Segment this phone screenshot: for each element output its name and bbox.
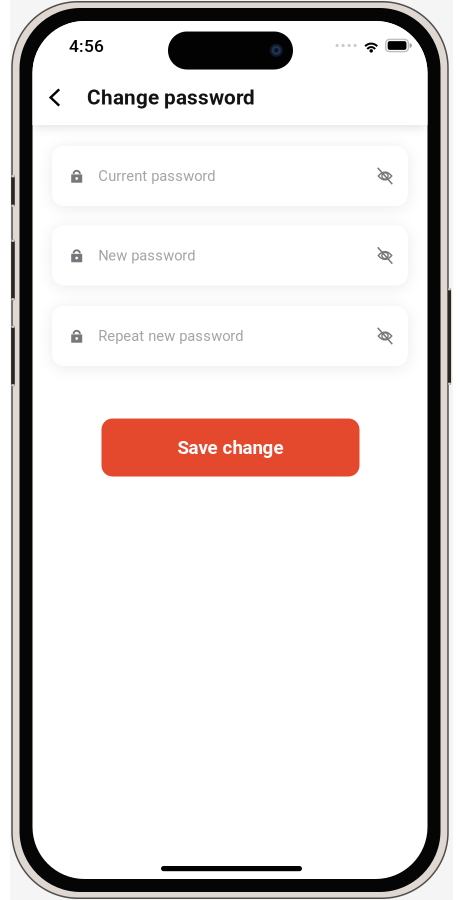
button[interactable]: Save change: [101, 418, 359, 476]
staticText: Repeat new password: [98, 327, 243, 345]
staticText: Change password: [87, 85, 255, 110]
staticText: New password: [98, 247, 195, 264]
staticText: Current password: [98, 167, 215, 185]
button[interactable]: Show New password: [365, 232, 405, 278]
button[interactable]: Show Repeat new password: [365, 313, 405, 359]
staticText: 4:56: [69, 36, 104, 56]
staticText: Save change: [177, 437, 283, 458]
button[interactable]: Show Current password: [365, 153, 405, 199]
button[interactable]: Back: [37, 75, 73, 119]
